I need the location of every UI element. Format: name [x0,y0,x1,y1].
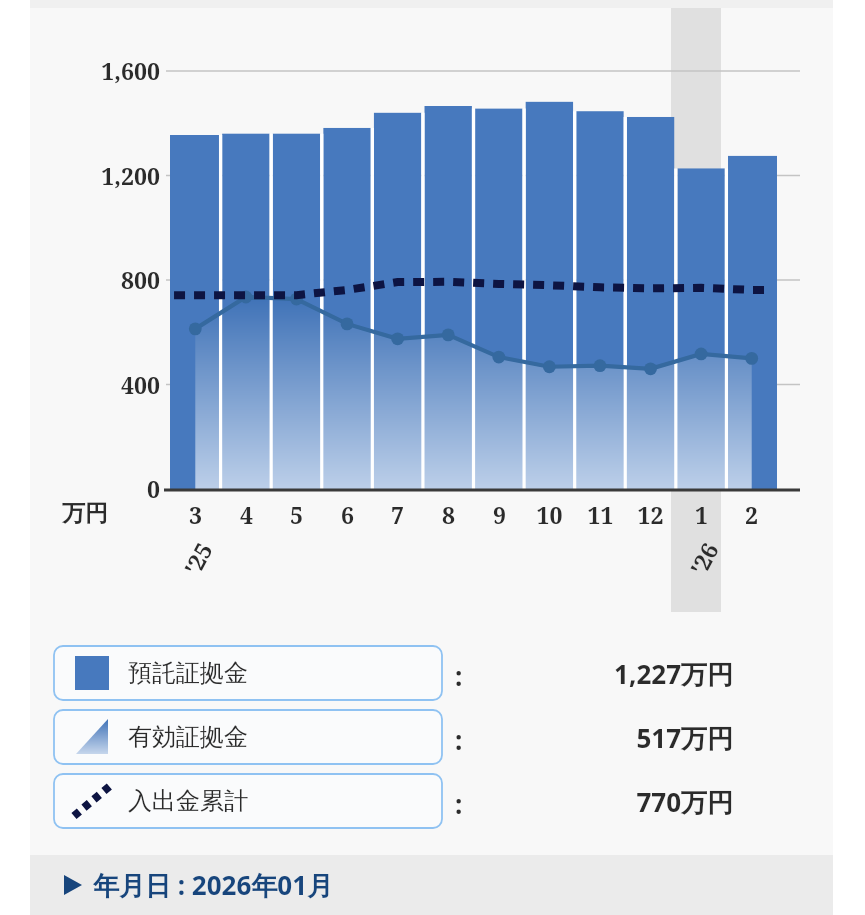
button[interactable]: 入出金累計 [54,774,442,828]
staticText: 4 [221,499,272,915]
staticText: 400 [52,369,160,915]
staticText: 3 [170,499,221,915]
staticText: 770万円 [483,784,733,915]
staticText: 517万円 [483,720,733,915]
staticText: 2 [726,499,777,915]
staticText: 入出金累計 [128,786,248,816]
button[interactable]: 有効証拠金 [54,710,442,764]
staticText: 6 [322,499,373,915]
staticText: '26 [682,537,725,580]
staticText: 万円 [62,499,108,528]
staticText: 9 [474,499,525,915]
staticText: : [455,786,463,821]
staticText: 有効証拠金 [128,722,248,752]
staticText: 1,200 [52,160,160,915]
staticText: 10 [524,499,575,915]
staticText: 年月日 : 2026年01月 [93,867,334,903]
staticText: 0 [52,473,160,915]
staticText: 預託証拠金 [128,658,248,688]
button[interactable]: Expand date [30,855,833,915]
staticText: 7 [372,499,423,915]
staticText: 5 [271,499,322,915]
staticText: 8 [423,499,474,915]
staticText: : [455,658,463,693]
staticText: 1 [676,499,727,915]
staticText: 1,600 [52,55,160,915]
staticText: '25 [176,537,219,580]
staticText: 11 [575,499,626,915]
staticText: 1,227万円 [483,656,733,915]
other: Expand date [62,874,84,896]
staticText: 12 [625,499,676,915]
staticText: 800 [52,264,160,915]
button[interactable]: 預託証拠金 [54,646,442,700]
staticText: : [455,722,463,757]
